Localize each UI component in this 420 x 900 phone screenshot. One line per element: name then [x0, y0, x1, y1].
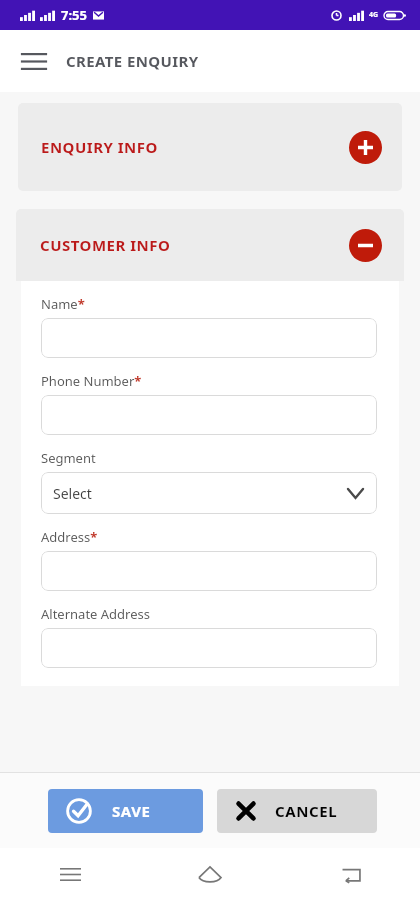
- button[interactable]: Collapse Customer Info: [349, 229, 382, 262]
- button[interactable]: [41, 551, 377, 591]
- staticText: 7:55: [61, 6, 87, 24]
- staticText: CREATE ENQUIRY: [66, 51, 199, 71]
- staticText: ENQUIRY INFO: [41, 137, 158, 157]
- button[interactable]: Select: [41, 472, 377, 514]
- button[interactable]: Back: [280, 848, 420, 900]
- button[interactable]: SAVE: [48, 789, 203, 833]
- button[interactable]: [41, 318, 377, 358]
- button[interactable]: Home: [140, 848, 280, 900]
- button[interactable]: CUSTOMER INFO: [16, 209, 404, 281]
- staticText: CUSTOMER INFO: [40, 235, 171, 255]
- button[interactable]: Recent apps: [0, 848, 140, 900]
- button[interactable]: [41, 628, 377, 668]
- staticText: Select: [53, 484, 92, 503]
- staticText: Phone Number*: [41, 372, 142, 390]
- staticText: 4G: [369, 10, 379, 20]
- button[interactable]: Expand ENQUIRY INFO: [349, 131, 382, 164]
- staticText: Segment: [41, 449, 96, 467]
- button[interactable]: Open navigation menu: [14, 41, 54, 81]
- button[interactable]: CANCEL: [217, 789, 377, 833]
- staticText: CANCEL: [275, 801, 338, 821]
- button[interactable]: [41, 395, 377, 435]
- button[interactable]: ENQUIRY INFO: [18, 103, 402, 191]
- staticText: Alternate Address: [41, 605, 150, 623]
- staticText: SAVE: [112, 801, 151, 821]
- staticText: Address*: [41, 528, 98, 546]
- staticText: Name*: [41, 295, 85, 313]
